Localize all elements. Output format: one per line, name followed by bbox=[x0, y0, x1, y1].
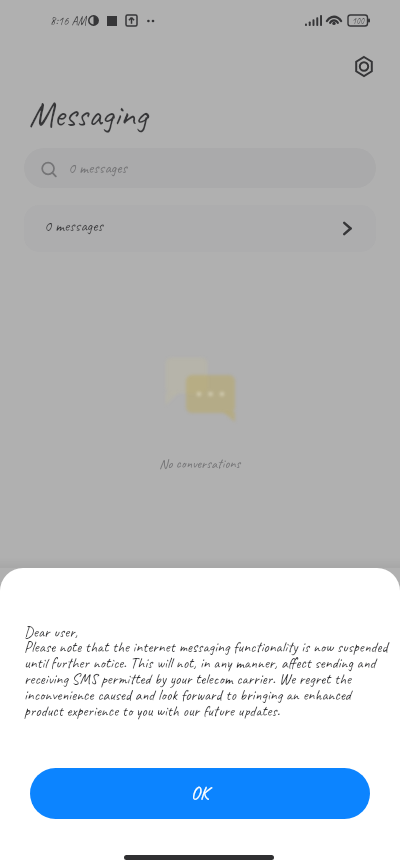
button[interactable]: Settings bbox=[345, 48, 382, 85]
staticText: Dear user, Please note that the internet… bbox=[24, 622, 388, 721]
staticText: 0 messages bbox=[44, 216, 103, 236]
staticText: Messaging bbox=[29, 93, 148, 136]
button[interactable]: 0 messages bbox=[24, 205, 376, 252]
button[interactable]: OK bbox=[30, 768, 370, 819]
staticText: 8:16 AM bbox=[50, 13, 87, 28]
staticText: No conversations bbox=[159, 455, 241, 473]
staticText: OK bbox=[191, 782, 209, 805]
button[interactable]: 0 messages bbox=[24, 148, 376, 188]
staticText: 100 bbox=[352, 15, 365, 26]
staticText: 0 messages bbox=[68, 158, 127, 178]
